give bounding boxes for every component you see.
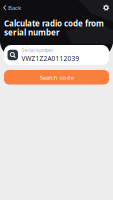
button[interactable]: Settings: [98, 2, 113, 13]
button[interactable]: Back: [0, 1, 26, 14]
staticText: Search code: [39, 73, 73, 81]
staticText: Serial number: [21, 47, 53, 54]
staticText: serial number: [4, 27, 60, 38]
staticText: Back: [8, 3, 21, 12]
button[interactable]: Serial number: [4, 45, 109, 65]
staticText: VWZ1Z2A0112039: [21, 54, 79, 63]
staticText: Calculate radio code from: [4, 18, 104, 29]
button[interactable]: Search code: [4, 70, 109, 84]
